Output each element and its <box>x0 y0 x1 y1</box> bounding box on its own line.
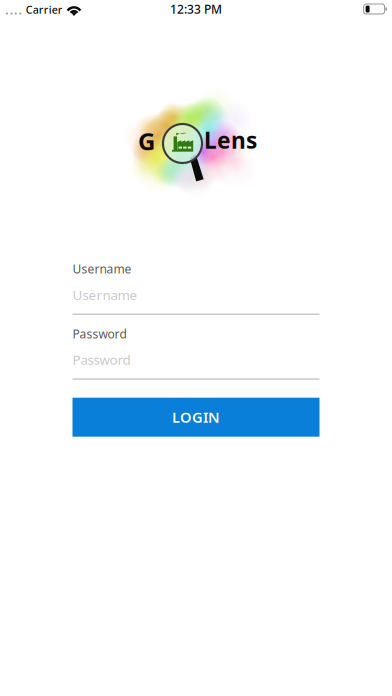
staticText: LOGIN <box>172 407 220 427</box>
button[interactable]: LOGIN <box>72 398 319 437</box>
staticText: Password <box>72 326 126 342</box>
staticText: 12:33 PM <box>170 1 222 17</box>
staticText: Username <box>72 286 137 304</box>
staticText: Username <box>72 261 131 277</box>
staticText: Password <box>72 351 130 368</box>
staticText: G <box>138 125 155 157</box>
staticText: Carrier <box>26 2 63 17</box>
staticText: Lens <box>204 125 257 155</box>
